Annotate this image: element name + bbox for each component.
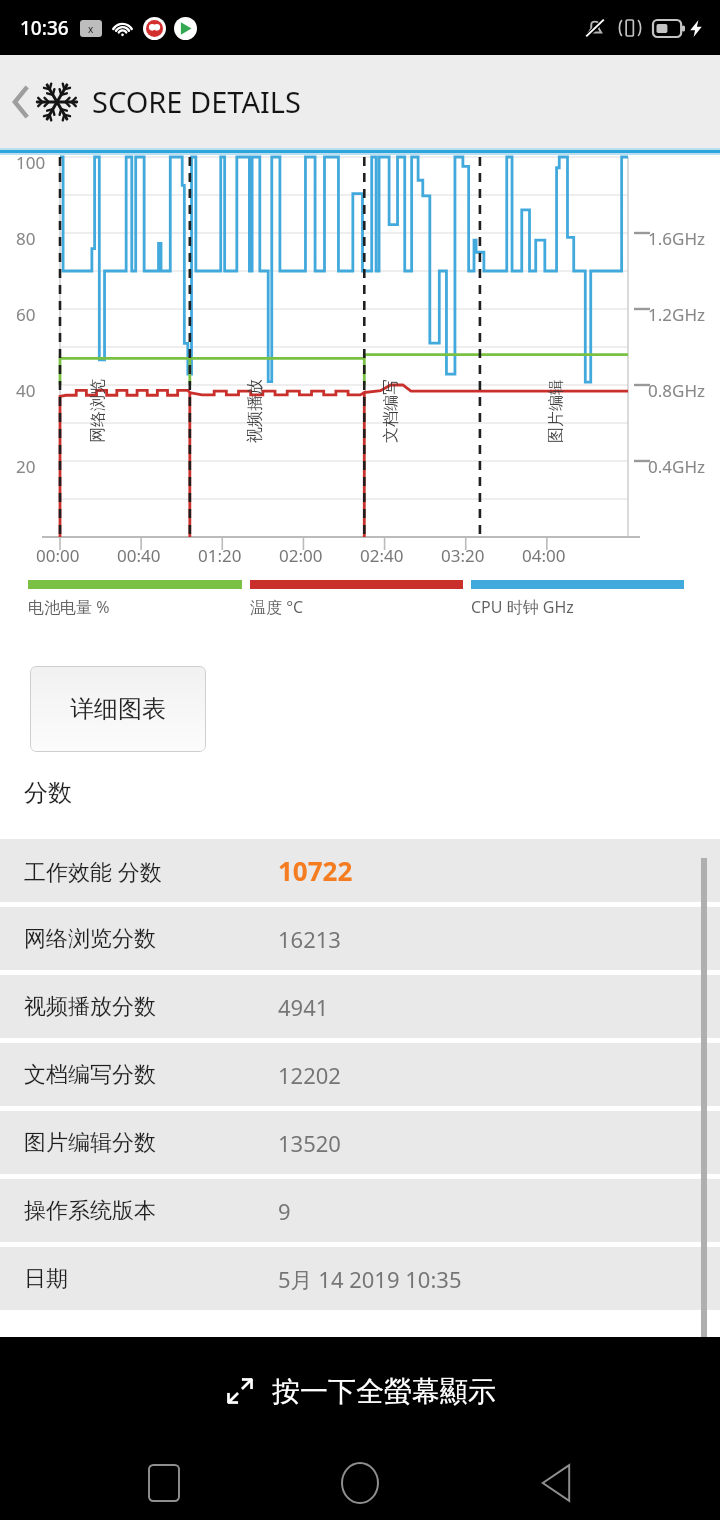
staticText: 04:00 <box>522 544 566 567</box>
staticText: 60 <box>16 303 36 326</box>
button[interactable]: 图片编辑分数 <box>0 1111 720 1174</box>
staticText: 按一下全螢幕顯示 <box>272 1374 496 1409</box>
staticText: 图片编辑分数 <box>24 1129 156 1157</box>
staticText: 详细图表 <box>70 694 166 724</box>
staticText: 00:00 <box>36 544 80 567</box>
staticText: 10722 <box>278 853 353 888</box>
staticText: 01:20 <box>198 544 242 567</box>
staticText: 40 <box>16 379 36 402</box>
staticText: 工作效能 分数 <box>24 856 162 886</box>
staticText: 0.4GHz <box>648 455 705 478</box>
staticText: 温度 °C <box>250 596 304 618</box>
staticText: 1.6GHz <box>648 227 705 250</box>
staticText: 02:00 <box>279 544 323 567</box>
button[interactable]: Back to score details <box>0 55 720 148</box>
button[interactable]: 工作效能 分数 <box>0 839 720 902</box>
staticText: 03:20 <box>441 544 485 567</box>
staticText: 80 <box>16 227 36 250</box>
button[interactable]: 文档编写分数 <box>0 1043 720 1106</box>
staticText: 文档编写分数 <box>24 1061 156 1089</box>
staticText: 电池电量 % <box>28 596 110 618</box>
staticText: 日期 <box>24 1265 68 1293</box>
button[interactable]: 日期 <box>0 1247 720 1310</box>
staticText: 文档编写 <box>381 379 401 443</box>
staticText: 4941 <box>278 992 329 1022</box>
button[interactable]: Home <box>328 1451 392 1515</box>
staticText: 操作系统版本 <box>24 1197 156 1225</box>
button[interactable]: 详细图表 <box>30 666 206 752</box>
staticText: 13520 <box>278 1128 341 1158</box>
staticText: 网络浏览分数 <box>24 925 156 953</box>
staticText: 分数 <box>24 778 72 808</box>
staticText: 5月 14 2019 10:35 <box>278 1264 462 1294</box>
staticText: x <box>88 22 94 36</box>
staticText: CPU 时钟 GHz <box>471 596 574 618</box>
staticText: 图片编辑 <box>546 379 566 443</box>
staticText: 20 <box>16 455 36 478</box>
staticText: 视频播放 <box>245 379 265 443</box>
button[interactable]: Back <box>524 1451 588 1515</box>
button[interactable]: 按一下全螢幕顯示 <box>0 1337 720 1445</box>
staticText: 9 <box>278 1196 291 1226</box>
staticText: SCORE DETAILS <box>92 82 301 121</box>
button[interactable]: 视频播放分数 <box>0 975 720 1038</box>
staticText: 02:40 <box>360 544 404 567</box>
staticText: 10:36 <box>20 15 69 41</box>
button[interactable]: 网络浏览分数 <box>0 907 720 970</box>
staticText: 100 <box>16 151 46 174</box>
staticText: 网络浏览 <box>88 379 108 443</box>
staticText: 16213 <box>278 924 341 954</box>
staticText: 0.8GHz <box>648 379 705 402</box>
button[interactable]: 操作系统版本 <box>0 1179 720 1242</box>
staticText: 12202 <box>278 1060 341 1090</box>
staticText: 00:40 <box>117 544 161 567</box>
button[interactable]: Recents <box>132 1451 196 1515</box>
staticText: 视频播放分数 <box>24 993 156 1021</box>
staticText: 1.2GHz <box>648 303 705 326</box>
